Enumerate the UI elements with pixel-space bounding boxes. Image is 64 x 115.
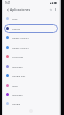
button[interactable]: Galaxy Watch4 (4, 33, 58, 42)
button[interactable]: Google Play (4, 71, 58, 80)
staticText: Citas (12, 17, 18, 20)
staticText: 9:41 (5, 1, 11, 5)
staticText: Galaxy Watch4 (12, 46, 29, 49)
staticText: Contactos (12, 55, 24, 58)
staticText: Google Play (12, 74, 26, 77)
button[interactable]: Mensajes (4, 62, 58, 71)
staticText: Meet (12, 84, 18, 87)
staticText: Mensajes (12, 65, 23, 68)
staticText: Google (12, 102, 21, 105)
staticText: Mensajes (12, 93, 23, 96)
button[interactable]: Contactos (4, 52, 58, 61)
staticText: Canvas (12, 27, 21, 30)
button[interactable]: More options (53, 7, 58, 12)
button[interactable]: Citas (4, 14, 58, 23)
staticText: Galaxy Watch4 (12, 36, 29, 39)
button[interactable]: Search (48, 7, 53, 12)
button[interactable]: Google (4, 99, 58, 108)
button[interactable]: Meet (4, 81, 58, 90)
button[interactable]: Galaxy Watch4 (4, 43, 58, 52)
button[interactable]: Mensajes (4, 90, 58, 99)
staticText: Aplicaciones (10, 7, 31, 12)
button[interactable]: Back (5, 7, 10, 12)
button[interactable]: Canvas (4, 24, 58, 33)
